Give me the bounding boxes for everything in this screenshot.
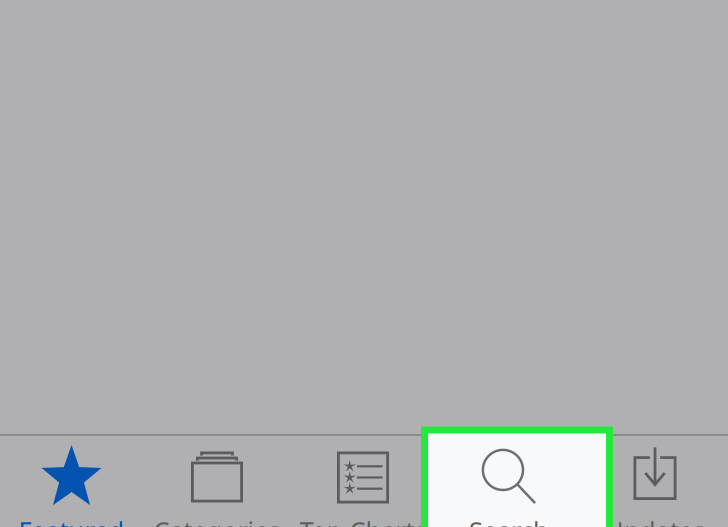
staticText: Top Charts: [299, 514, 426, 527]
button[interactable]: Top Charts: [290, 432, 436, 527]
staticText: Search: [469, 514, 549, 527]
staticText: Featured: [18, 514, 124, 527]
button[interactable]: Search: [436, 432, 582, 527]
button[interactable]: Categories: [144, 432, 290, 527]
button[interactable]: Featured: [0, 432, 144, 527]
button[interactable]: Updates: [582, 432, 728, 527]
staticText: Updates: [605, 514, 705, 527]
staticText: Categories: [153, 514, 280, 527]
